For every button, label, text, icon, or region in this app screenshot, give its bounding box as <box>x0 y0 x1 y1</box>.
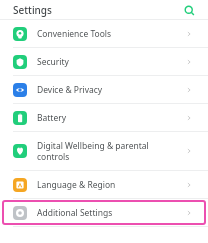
staticText: Device & Privacy <box>37 84 103 96</box>
button[interactable]: Device & Privacy <box>0 76 208 103</box>
staticText: Battery <box>37 112 67 124</box>
button[interactable]: Security <box>0 48 208 75</box>
button[interactable]: Digital Wellbeing & parental controls <box>0 132 208 170</box>
staticText: Language & Region <box>37 179 116 191</box>
staticText: Settings <box>13 3 52 17</box>
button[interactable]: Convenience Tools <box>0 20 208 47</box>
button[interactable]: Search <box>180 1 198 19</box>
button[interactable]: Language & Region <box>0 171 208 198</box>
button[interactable]: Battery <box>0 104 208 131</box>
staticText: Convenience Tools <box>37 28 112 40</box>
staticText: Digital Wellbeing & parental controls <box>37 140 162 162</box>
staticText: Additional Settings <box>37 207 113 219</box>
button[interactable]: Additional Settings <box>2 200 206 225</box>
staticText: Security <box>37 56 69 68</box>
